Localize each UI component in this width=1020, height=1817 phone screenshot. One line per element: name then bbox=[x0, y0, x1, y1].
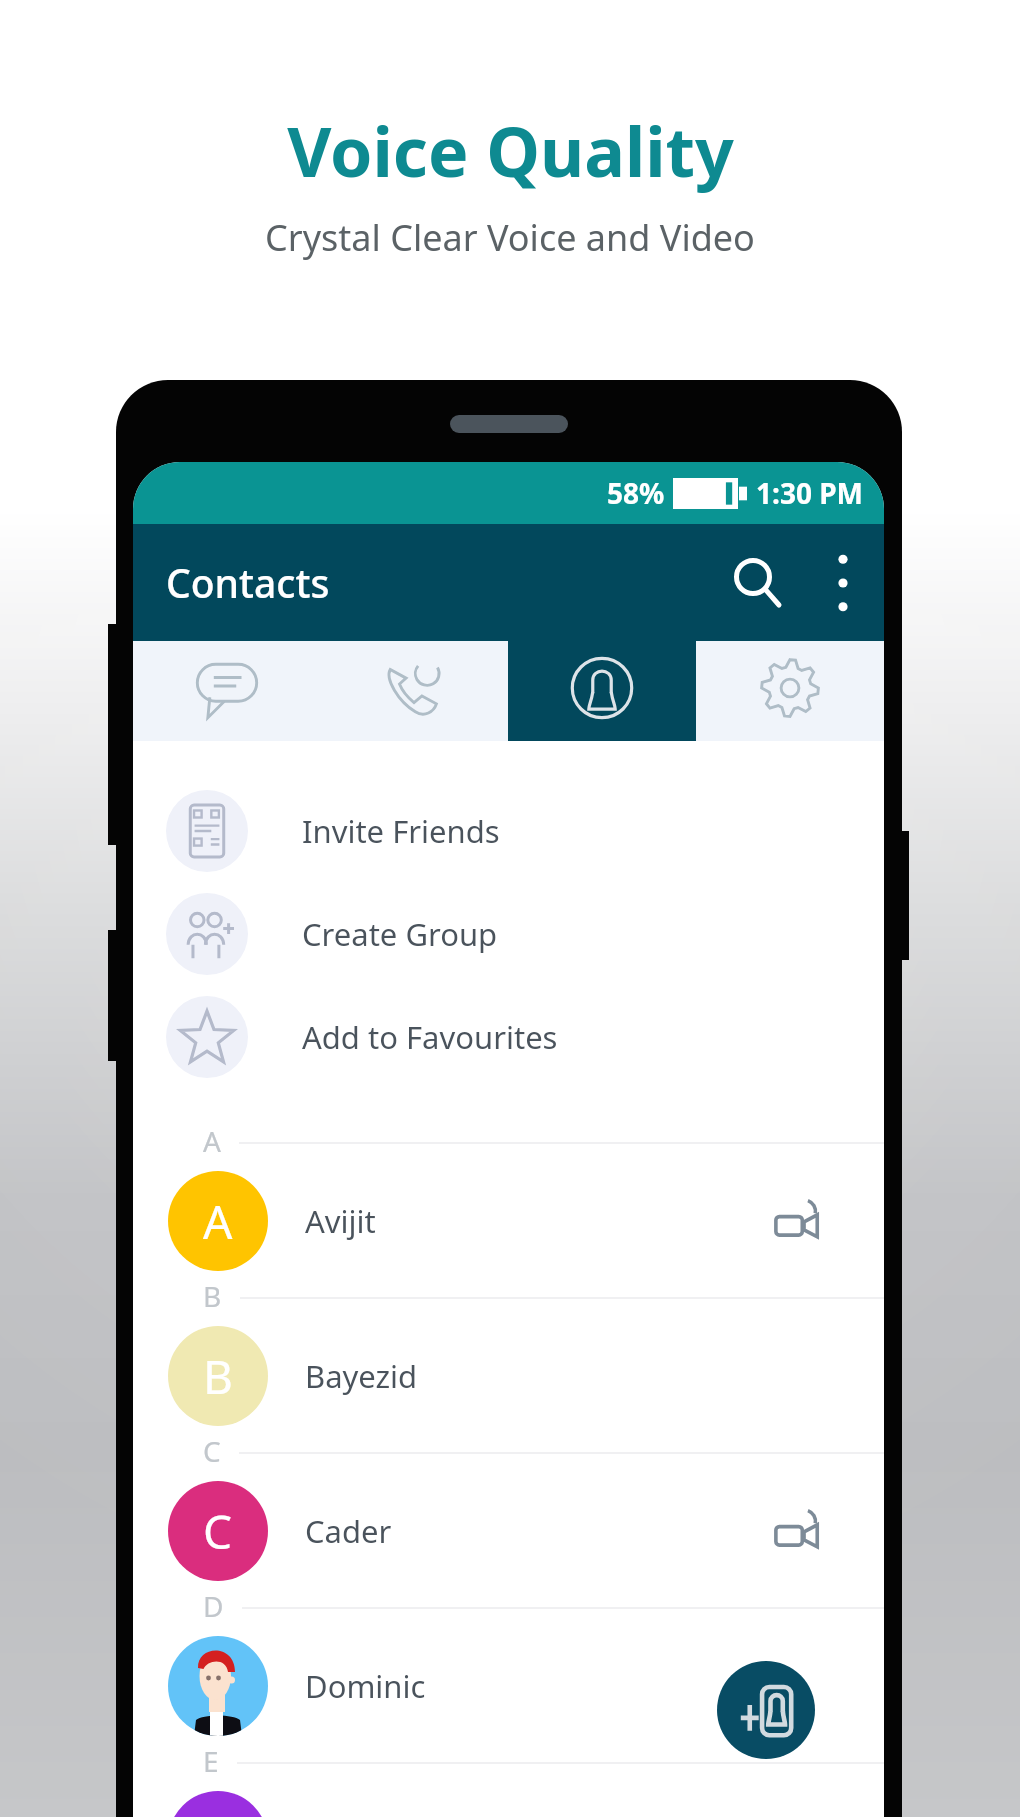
button[interactable]: Invite Friends bbox=[133, 779, 884, 882]
staticText: B bbox=[203, 1277, 222, 1315]
staticText: A bbox=[203, 1122, 221, 1160]
staticText: C bbox=[203, 1432, 221, 1470]
staticText: Avijit bbox=[305, 1200, 376, 1242]
staticText: Invite Friends bbox=[302, 810, 500, 852]
button[interactable]: Search bbox=[720, 545, 796, 621]
button[interactable]: E bbox=[133, 1787, 884, 1817]
staticText: B bbox=[203, 1345, 233, 1408]
staticText: Create Group bbox=[302, 913, 498, 955]
button[interactable]: Dominic bbox=[133, 1632, 884, 1739]
staticText: Dominic bbox=[305, 1665, 426, 1707]
button[interactable]: Video call Avijit bbox=[758, 1182, 836, 1260]
button[interactable]: More options bbox=[810, 550, 876, 616]
staticText: Bayezid bbox=[305, 1355, 418, 1397]
staticText: 58% bbox=[607, 474, 665, 512]
button[interactable]: Add contact bbox=[717, 1661, 815, 1759]
staticText: Contacts bbox=[166, 556, 330, 609]
button[interactable]: Video call Cader bbox=[758, 1492, 836, 1570]
button[interactable]: C bbox=[133, 1477, 884, 1584]
staticText: D bbox=[203, 1587, 224, 1625]
button[interactable]: B bbox=[133, 1322, 884, 1429]
staticText: 1:30 PM bbox=[756, 474, 863, 512]
staticText: A bbox=[203, 1190, 233, 1253]
staticText: Cader bbox=[305, 1510, 392, 1552]
staticText: C bbox=[203, 1500, 233, 1563]
staticText: Voice Quality bbox=[287, 104, 734, 197]
button[interactable]: Contacts bbox=[508, 641, 696, 741]
staticText: Add to Favourites bbox=[302, 1016, 558, 1058]
button[interactable]: Create Group bbox=[133, 882, 884, 985]
button[interactable]: Add to Favourites bbox=[133, 985, 884, 1088]
staticText: E bbox=[203, 1742, 219, 1780]
button[interactable]: A bbox=[133, 1167, 884, 1274]
button[interactable]: Chats bbox=[133, 641, 320, 741]
staticText: Crystal Clear Voice and Video bbox=[265, 213, 755, 262]
button[interactable]: Calls bbox=[320, 641, 508, 741]
button[interactable]: Settings bbox=[696, 641, 884, 741]
